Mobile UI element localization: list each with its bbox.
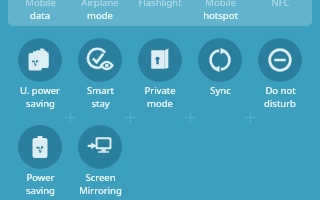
staticText: NFC bbox=[271, 0, 290, 9]
button[interactable]: Private mode bbox=[130, 38, 190, 100]
button[interactable]: Flashlight bbox=[130, 0, 190, 9]
staticText: Mobile bbox=[25, 0, 56, 9]
button[interactable]: Ultra power saving mode bbox=[10, 38, 70, 100]
button[interactable]: Do not disturb bbox=[250, 38, 310, 100]
staticText: hotspot bbox=[203, 9, 238, 22]
button[interactable]: Sync bbox=[190, 38, 250, 100]
staticText: Power bbox=[26, 171, 55, 184]
button[interactable]: Mobile bbox=[10, 0, 70, 22]
staticText: saving bbox=[26, 97, 55, 110]
button[interactable]: Smart stay bbox=[70, 38, 130, 100]
staticText: stay bbox=[91, 97, 110, 110]
staticText: Screen bbox=[85, 171, 116, 184]
staticText: saving bbox=[26, 184, 55, 197]
staticText: disturb bbox=[264, 97, 296, 110]
button[interactable]: Screen Mirroring bbox=[70, 125, 130, 187]
button[interactable]: Power saving mode bbox=[10, 125, 70, 187]
staticText: Private bbox=[144, 84, 176, 97]
staticText: Smart bbox=[87, 84, 114, 97]
button[interactable]: Airplane bbox=[70, 0, 130, 22]
staticText: mode bbox=[147, 97, 173, 110]
staticText: Airplane bbox=[81, 0, 119, 9]
staticText: data bbox=[30, 9, 50, 22]
button[interactable]: Mobile bbox=[190, 0, 250, 22]
staticText: Do not bbox=[265, 84, 296, 97]
button[interactable]: NFC bbox=[250, 0, 310, 9]
staticText: mode bbox=[87, 9, 113, 22]
staticText: U. power bbox=[20, 84, 60, 97]
staticText: Mobile bbox=[205, 0, 236, 9]
staticText: Mirroring bbox=[79, 184, 122, 197]
staticText: Sync bbox=[210, 84, 231, 97]
staticText: Flashlight bbox=[138, 0, 182, 9]
